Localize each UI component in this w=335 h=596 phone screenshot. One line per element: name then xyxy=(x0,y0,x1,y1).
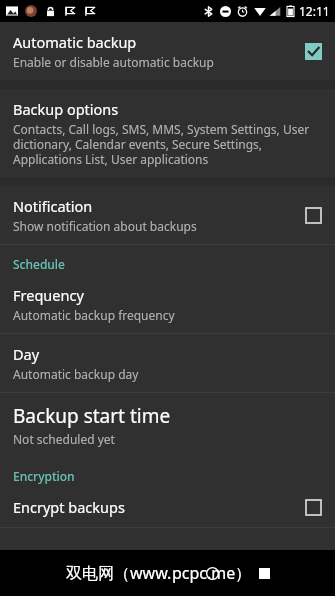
staticText: Frequency xyxy=(13,285,84,305)
staticText: Day xyxy=(13,344,40,364)
staticText: Contacts, Call logs, SMS, MMS, System Se… xyxy=(13,121,323,167)
button[interactable]: Automatic backup xyxy=(0,22,335,80)
staticText: 12:11 xyxy=(299,3,330,19)
staticText: Not scheduled yet xyxy=(13,431,115,447)
button[interactable]: Frequency xyxy=(0,275,335,333)
staticText: Automatic backup day xyxy=(13,366,139,382)
button[interactable]: Encrypt backups toggle xyxy=(303,497,323,517)
staticText: Automatic backup frequency xyxy=(13,307,175,323)
staticText: pcpc.me） xyxy=(172,562,252,584)
button[interactable]: Backup options xyxy=(0,89,335,177)
staticText: 双电网（www. xyxy=(66,562,172,584)
button[interactable]: Notification toggle xyxy=(303,205,323,225)
staticText: Show notification about backups xyxy=(13,218,197,234)
staticText: Automatic backup xyxy=(13,32,137,52)
staticText: Encrypt backups xyxy=(13,497,125,517)
staticText: Encryption xyxy=(13,468,75,484)
button[interactable]: Encrypt backups xyxy=(0,487,335,527)
button[interactable]: Notification xyxy=(0,186,335,244)
button[interactable]: Day xyxy=(0,334,335,392)
staticText: Enable or disable automatic backup xyxy=(13,54,214,70)
staticText: Schedule xyxy=(13,256,65,272)
staticText: Backup start time xyxy=(13,403,171,429)
button[interactable]: Backup start time xyxy=(0,393,335,457)
button[interactable]: Automatic backup toggle xyxy=(303,41,323,61)
staticText: Backup options xyxy=(13,99,119,119)
staticText: Notification xyxy=(13,196,93,216)
